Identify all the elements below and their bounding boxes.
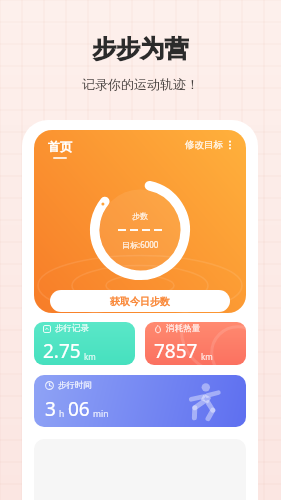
staticText: 步行时间 <box>58 380 92 391</box>
staticText: 目标:6000 <box>122 239 159 250</box>
staticText: 2.75 <box>43 338 81 364</box>
staticText: min <box>93 408 109 420</box>
button[interactable]: 消耗热量 <box>145 322 246 365</box>
staticText: 06 <box>68 396 90 422</box>
button[interactable]: 获取今日步数 <box>50 290 230 312</box>
staticText: 步步为营 <box>0 34 281 64</box>
staticText: 步行记录 <box>55 323 89 334</box>
button[interactable]: 步行时间 <box>34 375 246 427</box>
staticText: 7857 <box>154 338 198 364</box>
staticText: 步数 <box>132 211 148 221</box>
staticText: 记录你的运动轨迹！ <box>0 76 281 92</box>
button[interactable]: 修改目标 <box>185 139 232 151</box>
staticText: 消耗热量 <box>166 323 200 334</box>
button[interactable]: 首页 <box>48 139 72 159</box>
staticText: 修改目标 <box>185 139 223 151</box>
staticText: km <box>84 351 96 362</box>
other: More options <box>228 139 232 151</box>
staticText: 获取今日步数 <box>110 295 170 308</box>
button[interactable]: 步行记录 <box>34 322 135 365</box>
staticText: 3 <box>45 396 56 422</box>
staticText: h <box>59 408 65 420</box>
staticText: km <box>201 351 213 362</box>
staticText: 首页 <box>48 139 72 154</box>
